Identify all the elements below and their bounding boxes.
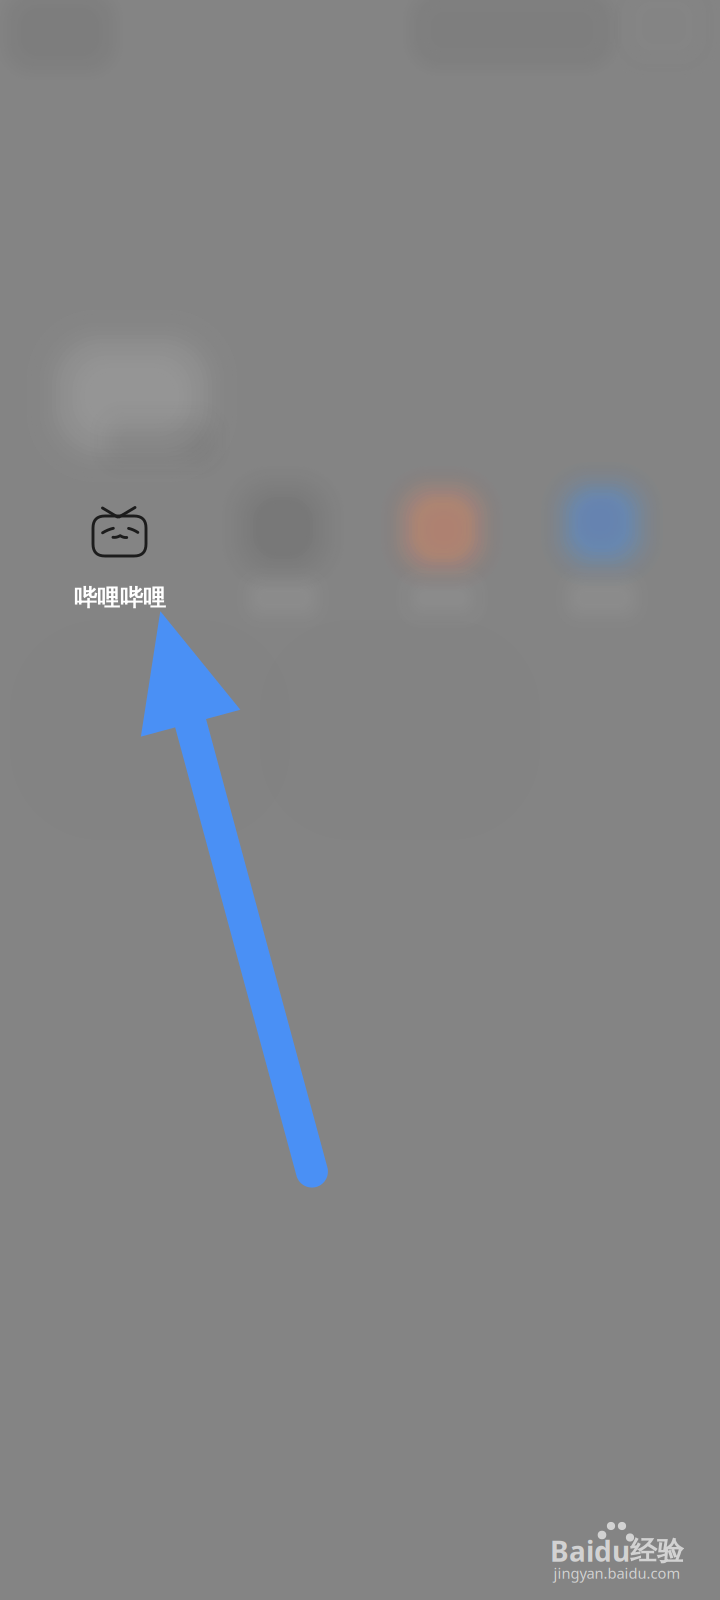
staticText: 哔哩哔哩 xyxy=(74,584,166,612)
staticText: Bai xyxy=(550,1532,594,1570)
staticText: du xyxy=(594,1532,630,1570)
staticText: jingyan.baidu.com xyxy=(553,1563,680,1583)
staticText: 经验 xyxy=(630,1535,684,1567)
button[interactable]: 哔哩哔哩 xyxy=(68,497,172,617)
